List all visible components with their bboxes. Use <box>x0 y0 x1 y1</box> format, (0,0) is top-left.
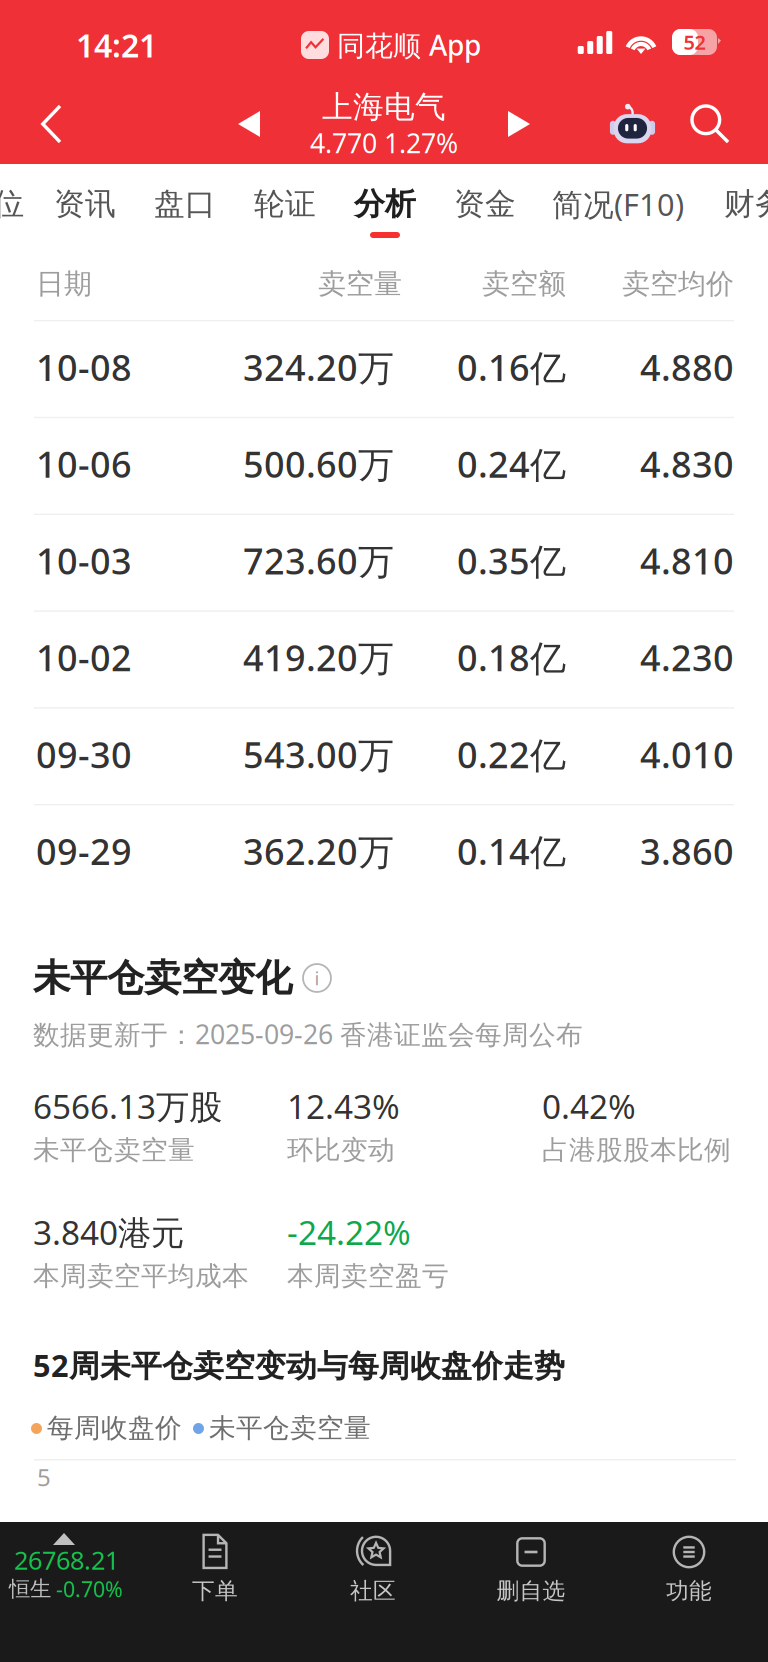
button[interactable]: 简况(F10) <box>548 166 688 250</box>
button[interactable]: 位 <box>0 166 32 250</box>
button[interactable]: 上海电气 <box>254 88 514 166</box>
staticText: 盘口 <box>154 185 216 223</box>
staticText: 324.20万 <box>243 343 394 391</box>
staticText: 3.860 <box>640 827 734 875</box>
staticText: 位 <box>0 185 24 223</box>
staticText: 同花顺 App <box>337 26 481 64</box>
staticText: 0.14亿 <box>457 827 566 875</box>
staticText: 0.16亿 <box>457 343 566 391</box>
button[interactable]: 社区 <box>298 1533 448 1613</box>
staticText: 0.18亿 <box>457 633 566 681</box>
staticText: 财务 <box>724 185 768 223</box>
button[interactable]: 功能 <box>614 1533 764 1613</box>
staticText: 0.24亿 <box>457 440 566 488</box>
button[interactable]: AI assistant <box>598 90 666 158</box>
button[interactable]: Search <box>676 90 744 158</box>
button[interactable]: 资金 <box>444 166 526 250</box>
staticText: 数据更新于：2025-09-26 香港证监会每周公布 <box>33 1016 583 1052</box>
staticText: 每周收盘价 <box>47 1412 182 1444</box>
staticText: -24.22% <box>287 1210 411 1254</box>
staticText: 4.880 <box>640 343 734 391</box>
staticText: 14:21 <box>76 24 157 66</box>
button[interactable]: 财务 <box>717 166 768 250</box>
staticText: 资金 <box>454 185 516 223</box>
staticText: 10-02 <box>36 633 132 681</box>
staticText: 4.010 <box>640 730 734 778</box>
staticText: 删自选 <box>496 1577 565 1605</box>
staticText: 资讯 <box>54 185 116 223</box>
staticText: 轮证 <box>254 185 316 223</box>
staticText: 10-06 <box>36 440 132 488</box>
staticText: 6566.13万股 <box>33 1084 222 1128</box>
staticText: 723.60万 <box>243 537 394 584</box>
staticText: 3.840港元 <box>33 1210 184 1254</box>
button[interactable]: 下单 <box>140 1533 290 1613</box>
button[interactable]: 资讯 <box>44 166 126 250</box>
staticText: 4.770 1.27% <box>310 125 458 161</box>
staticText: 未平仓卖空量 <box>33 1134 195 1166</box>
staticText: 26768.21 <box>14 1543 119 1577</box>
staticText: 0.22亿 <box>457 730 566 778</box>
staticText: 10-08 <box>36 343 132 391</box>
staticText: 简况(F10) <box>552 184 684 224</box>
staticText: 419.20万 <box>243 633 394 681</box>
staticText: 5 <box>37 1461 51 1493</box>
staticText: 4.830 <box>640 440 734 488</box>
staticText: 卖空额 <box>482 267 566 301</box>
staticText: 分析 <box>354 185 416 223</box>
staticText: 占港股股本比例 <box>542 1134 731 1166</box>
staticText: 4.230 <box>640 633 734 681</box>
staticText: 未平仓卖空变化 <box>33 955 292 1001</box>
staticText: 环比变动 <box>287 1134 395 1166</box>
staticText: 上海电气 <box>322 88 446 126</box>
staticText: 09-30 <box>36 730 132 778</box>
staticText: 543.00万 <box>243 730 394 778</box>
button[interactable]: 轮证 <box>244 166 326 250</box>
staticText: 卖空量 <box>318 267 402 301</box>
staticText: 10-03 <box>36 537 132 584</box>
staticText: 0.42% <box>542 1084 636 1128</box>
staticText: 52 <box>683 29 705 55</box>
button[interactable]: Previous stock <box>219 93 281 155</box>
staticText: 09-29 <box>36 827 132 875</box>
staticText: 500.60万 <box>243 440 394 488</box>
staticText: i <box>314 966 319 990</box>
staticText: 362.20万 <box>243 827 394 875</box>
staticText: 未平仓卖空量 <box>209 1412 371 1444</box>
staticText: 社区 <box>350 1577 396 1605</box>
button[interactable]: Back <box>20 86 96 162</box>
staticText: 恒生 <box>9 1576 51 1602</box>
staticText: 52周未平仓卖空变动与每周收盘价走势 <box>33 1345 565 1385</box>
staticText: 0.35亿 <box>457 537 566 584</box>
button[interactable]: 盘口 <box>144 166 226 250</box>
staticText: 下单 <box>192 1577 238 1605</box>
button[interactable]: 26768.21 <box>0 1522 140 1618</box>
staticText: -0.70% <box>56 1575 123 1603</box>
staticText: 本周卖空盈亏 <box>287 1260 449 1292</box>
button[interactable]: 删自选 <box>456 1533 606 1613</box>
button[interactable]: 分析 <box>344 166 426 250</box>
staticText: 功能 <box>666 1577 712 1605</box>
button[interactable]: Next stock <box>487 93 549 155</box>
staticText: 日期 <box>36 267 92 301</box>
staticText: 卖空均价 <box>622 267 734 301</box>
staticText: 12.43% <box>287 1084 400 1128</box>
staticText: 4.810 <box>640 537 734 584</box>
staticText: 本周卖空平均成本 <box>33 1260 249 1292</box>
